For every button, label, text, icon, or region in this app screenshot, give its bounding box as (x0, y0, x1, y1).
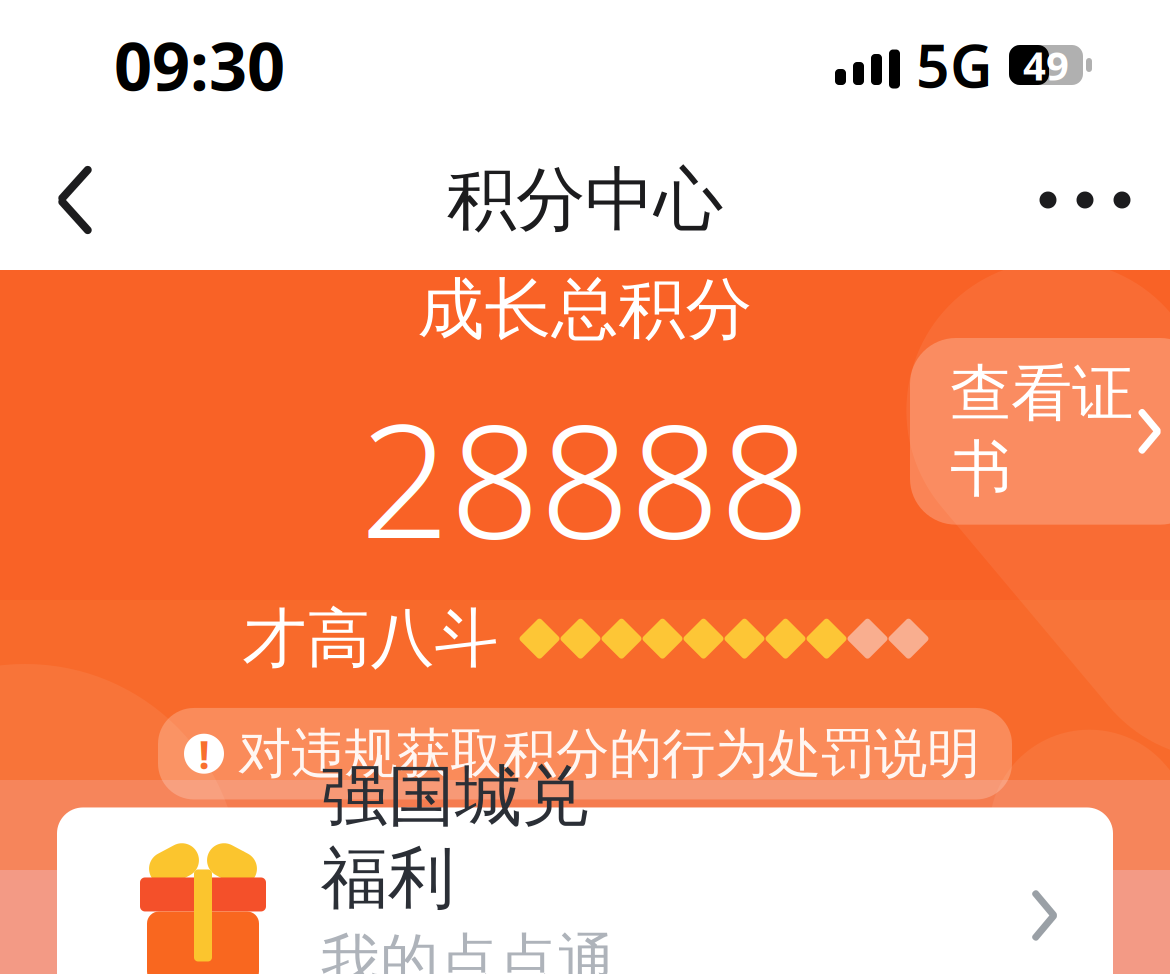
staticText: 49 (1023, 38, 1069, 91)
staticText: 成长总积分 (417, 268, 752, 350)
button[interactable]: ! (158, 708, 1012, 799)
staticText: 09:30 (114, 21, 285, 109)
staticText: ! (198, 727, 209, 780)
button[interactable]: Back (20, 145, 130, 255)
staticText: 我的点点通7425 (321, 925, 616, 974)
button[interactable]: More options (1020, 145, 1150, 255)
staticText: 对违规获取积分的行为处罚说明 (238, 721, 980, 786)
staticText: 积分中心 (447, 157, 723, 243)
staticText: 强国城兑福利 (321, 756, 589, 919)
staticText: 查看证书 (950, 356, 1133, 507)
staticText: 28888 (360, 372, 810, 581)
button[interactable]: 强国城兑福利 (57, 807, 1113, 974)
staticText: 才高八斗 (242, 599, 498, 678)
staticText: 5G (916, 26, 993, 104)
button[interactable]: 查看证书 (870, 338, 1170, 525)
